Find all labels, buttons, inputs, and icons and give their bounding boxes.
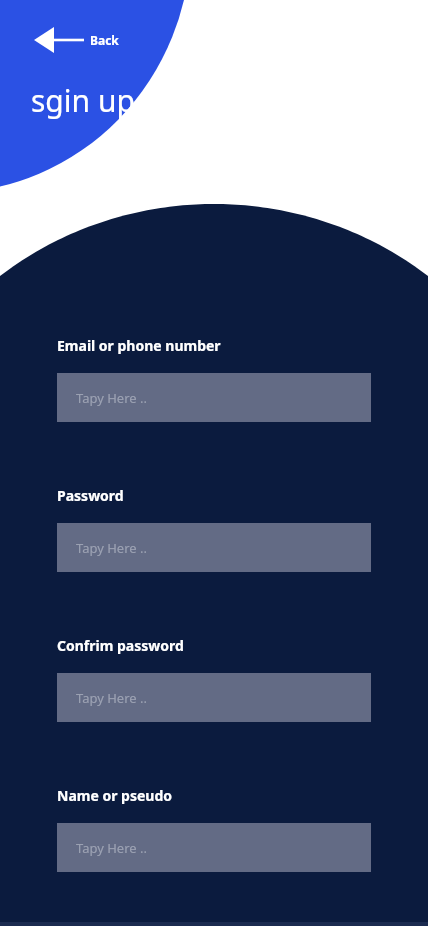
button[interactable]: Tapy Here ..	[57, 823, 371, 872]
staticText: Back	[90, 32, 119, 48]
staticText: Tapy Here ..	[76, 539, 147, 557]
staticText: Password	[57, 486, 124, 505]
button[interactable]: Tapy Here ..	[57, 373, 371, 422]
button[interactable]: Tapy Here ..	[57, 523, 371, 572]
button[interactable]: Tapy Here ..	[57, 673, 371, 722]
staticText: Confrim password	[57, 636, 184, 655]
staticText: sgin up	[31, 80, 135, 121]
button[interactable]: Back	[26, 24, 123, 56]
staticText: Tapy Here ..	[76, 389, 147, 407]
staticText: Tapy Here ..	[76, 839, 147, 857]
staticText: Name or pseudo	[57, 786, 172, 805]
staticText: Tapy Here ..	[76, 689, 147, 707]
staticText: Email or phone number	[57, 336, 221, 355]
